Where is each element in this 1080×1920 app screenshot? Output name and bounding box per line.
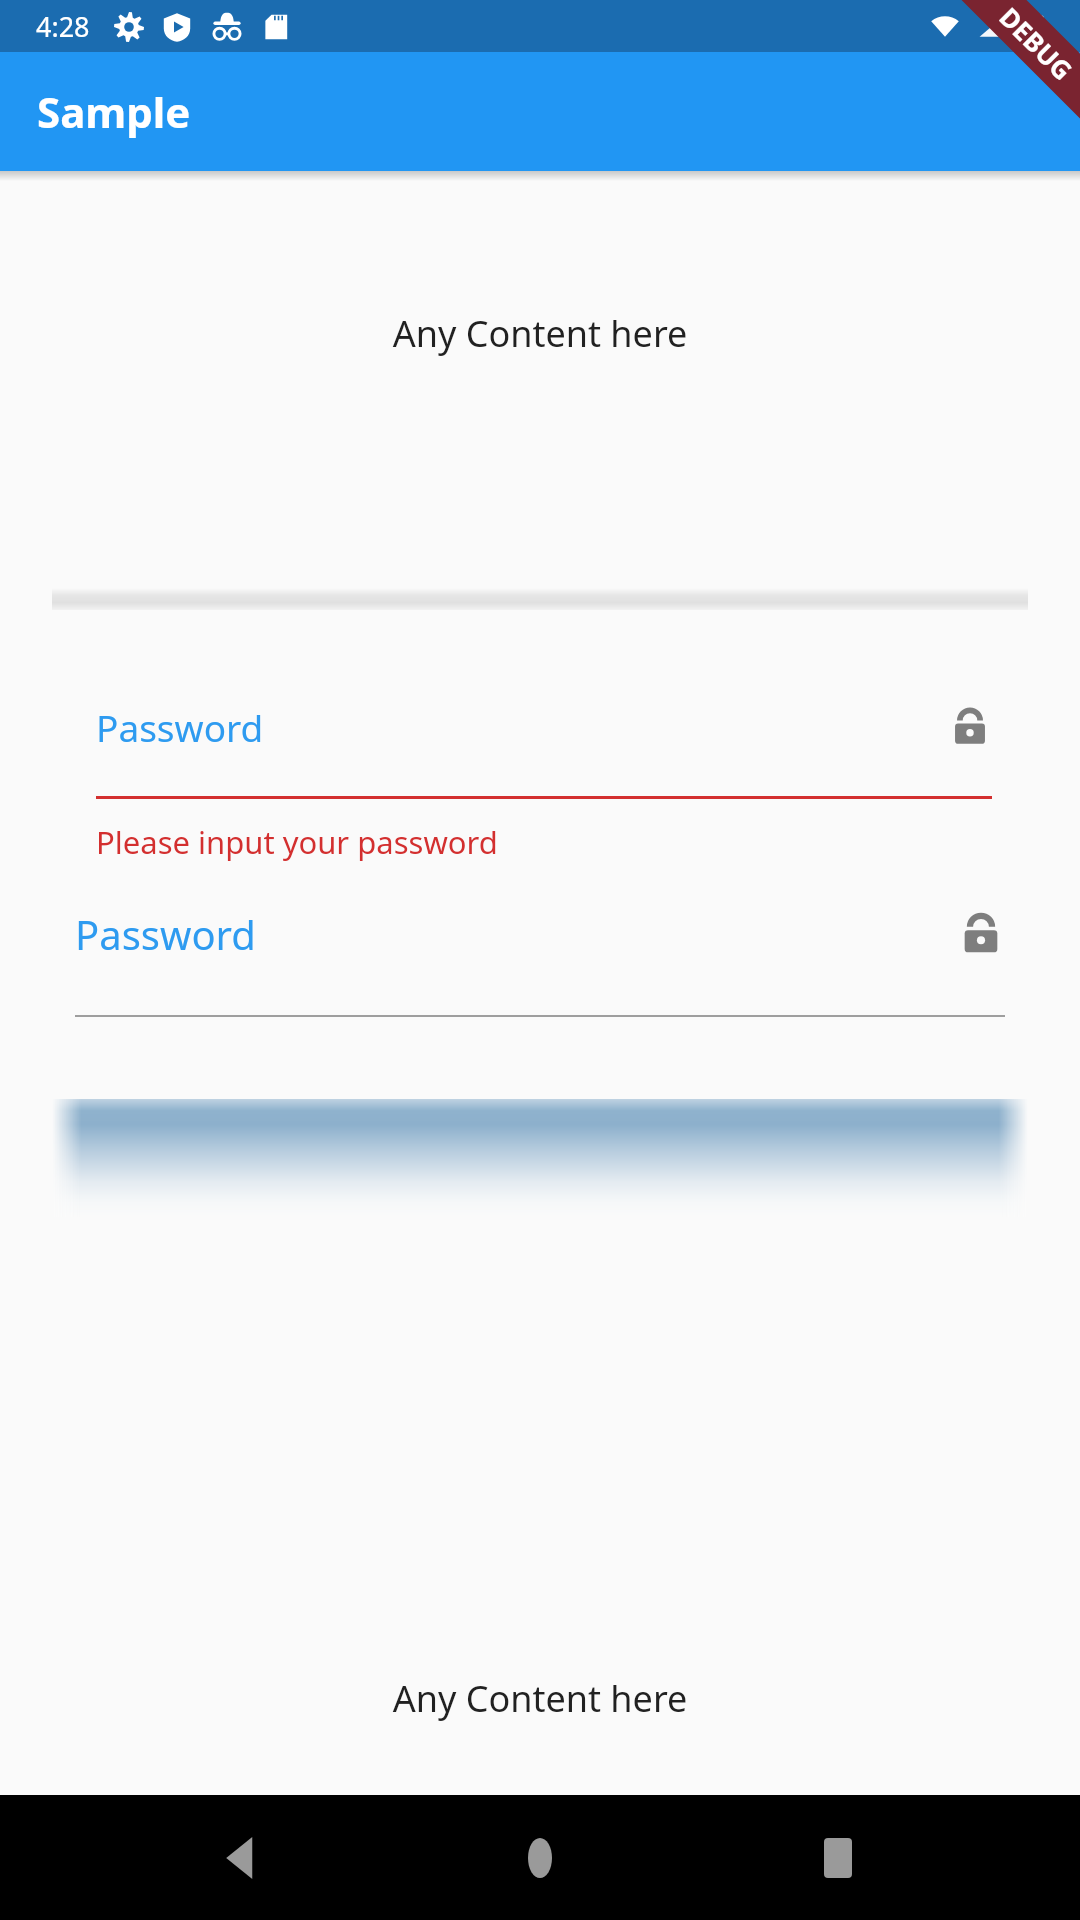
staticText: Password — [96, 702, 264, 752]
staticText: Please input your password — [96, 821, 498, 863]
button[interactable]: Home — [485, 1803, 595, 1913]
staticText: Any Content here — [0, 309, 1080, 358]
staticText: Sample — [37, 83, 191, 140]
staticText: Any Content here — [0, 1674, 1080, 1723]
staticText: 4:28 — [36, 8, 90, 45]
button[interactable]: Password visibility — [948, 705, 992, 749]
button[interactable]: Password — [0, 702, 1080, 799]
staticText: Password — [75, 907, 256, 961]
staticText: DEBUG — [992, 0, 1080, 88]
button[interactable]: Recent apps — [783, 1803, 893, 1913]
button[interactable]: Password visibility — [957, 910, 1005, 958]
button[interactable]: Back — [188, 1803, 298, 1913]
button[interactable]: Password — [0, 907, 1080, 1017]
